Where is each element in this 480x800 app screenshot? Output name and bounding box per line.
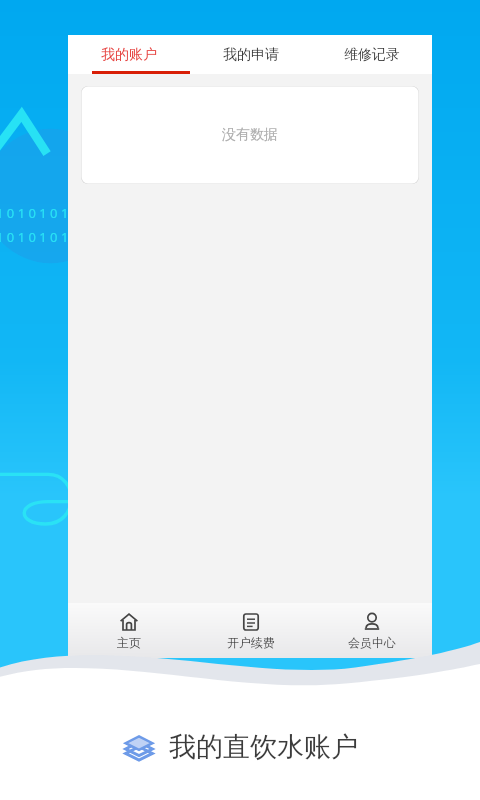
staticText: 主页 [117,635,141,650]
staticText: 没有数据 [222,126,278,144]
staticText: 1 0 1 0 1 0 1 [0,228,69,246]
button[interactable]: 主页 [68,603,190,658]
button[interactable]: 没有数据 [81,86,419,184]
staticText: 我的申请 [223,46,279,64]
staticText: 维修记录 [344,46,400,64]
button[interactable]: 我的账户 [68,35,190,74]
staticText: 1 0 1 0 1 0 1 [0,204,69,222]
staticText: 我的直饮水账户 [169,730,358,764]
staticText: 开户续费 [227,635,275,650]
button[interactable]: 维修记录 [311,35,432,74]
staticText: 我的账户 [101,46,157,64]
button[interactable]: 会员中心 [311,603,432,658]
button[interactable]: 开户续费 [190,603,311,658]
staticText: 会员中心 [348,635,396,650]
button[interactable]: 我的申请 [190,35,311,74]
